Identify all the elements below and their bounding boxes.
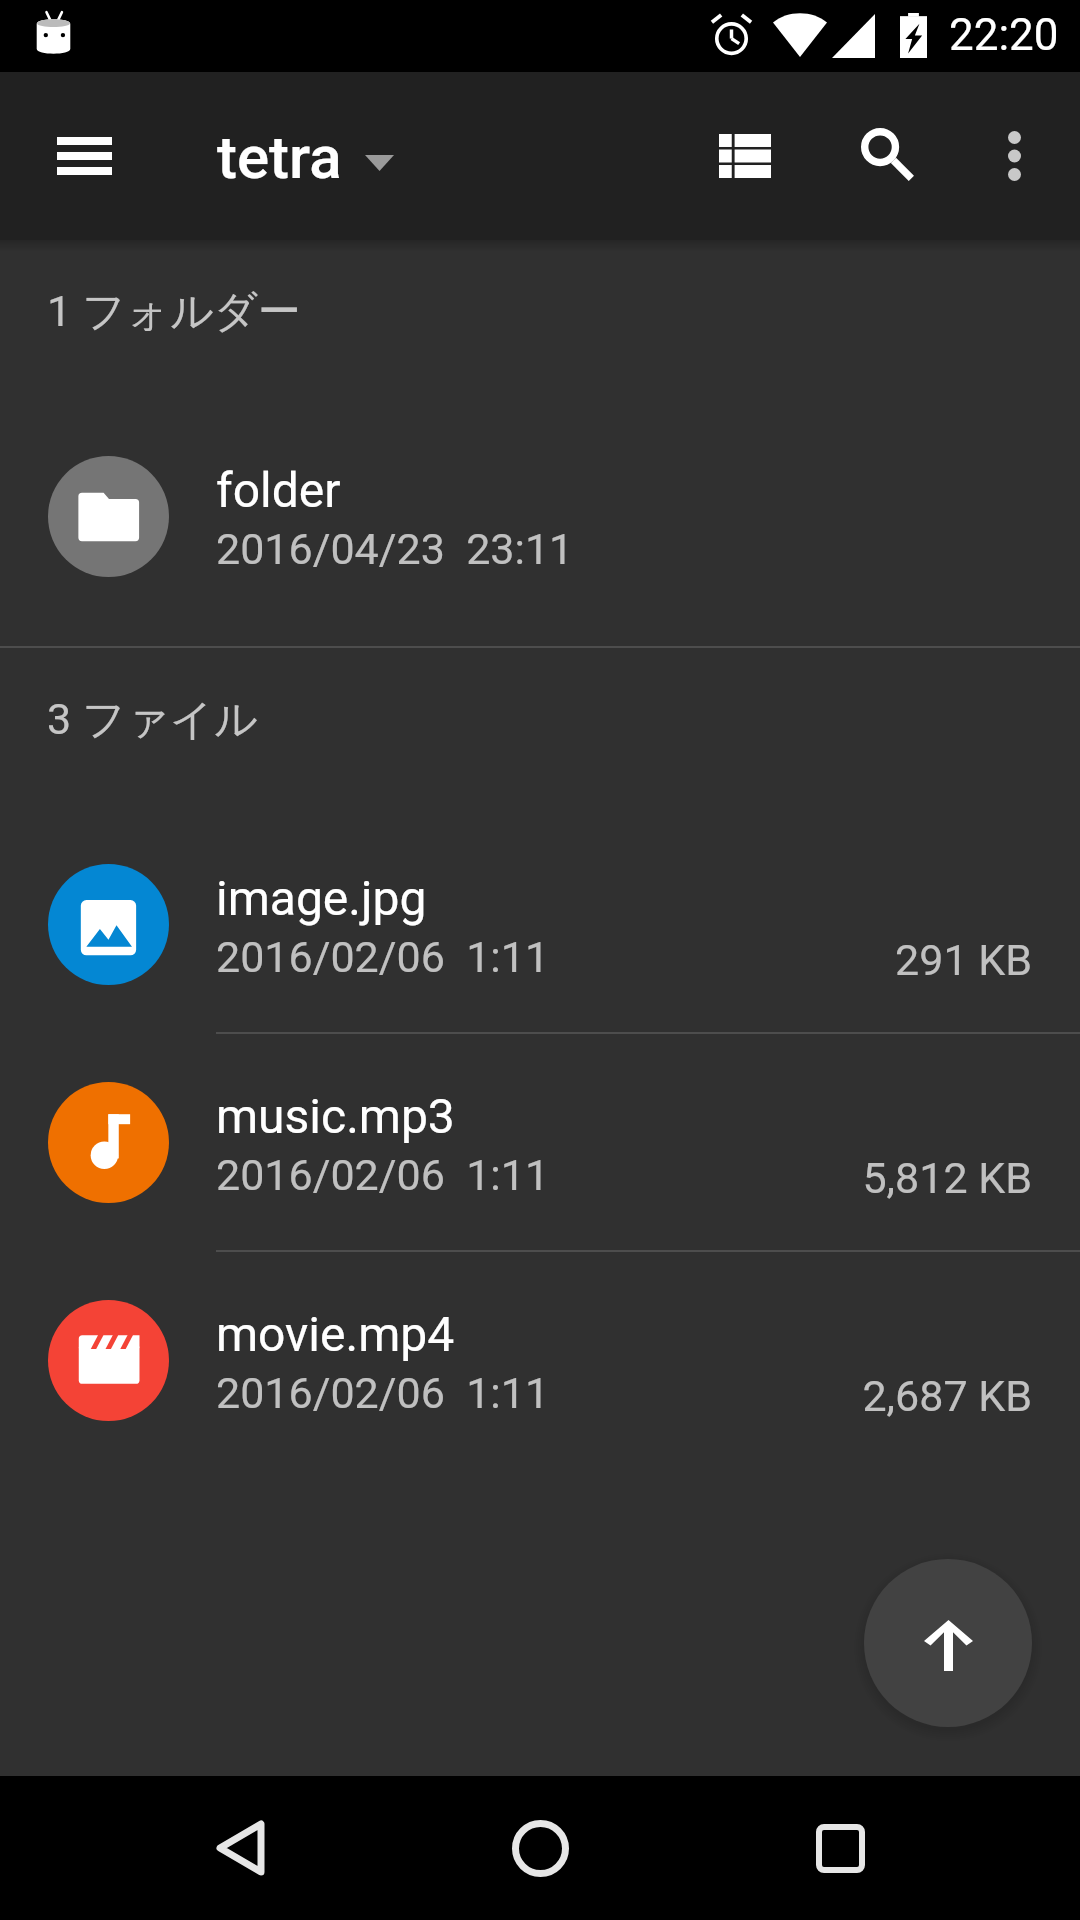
- staticText: folder: [216, 462, 341, 518]
- staticText: 5,812 KB: [862, 1153, 1032, 1203]
- button[interactable]: tetra, choose storage: [217, 122, 399, 192]
- staticText: music.mp3: [216, 1088, 455, 1144]
- button[interactable]: Back: [180, 1788, 300, 1908]
- staticText: 2016/02/06 1:11: [216, 1150, 550, 1200]
- staticText: 291 KB: [895, 935, 1032, 985]
- button[interactable]: Home: [480, 1788, 600, 1908]
- button[interactable]: Open navigation drawer: [30, 102, 138, 210]
- staticText: 2,687 KB: [862, 1371, 1032, 1421]
- button[interactable]: Switch view: [693, 104, 797, 208]
- staticText: 3 ファイル: [47, 693, 258, 747]
- button[interactable]: music.mp3: [0, 1034, 1080, 1250]
- staticText: 2016/02/06 1:11: [216, 932, 550, 982]
- button[interactable]: Scroll to top: [864, 1559, 1032, 1727]
- button[interactable]: Search: [835, 104, 939, 208]
- button[interactable]: folder: [0, 408, 1080, 624]
- staticText: image.jpg: [216, 870, 427, 926]
- button[interactable]: Recent apps: [780, 1788, 900, 1908]
- staticText: movie.mp4: [216, 1306, 455, 1362]
- staticText: tetra: [217, 122, 342, 192]
- button[interactable]: image.jpg: [0, 816, 1080, 1032]
- staticText: 2016/02/06 1:11: [216, 1368, 550, 1418]
- staticText: 1 フォルダー: [47, 285, 301, 339]
- staticText: 2016/04/23 23:11: [216, 524, 574, 574]
- button[interactable]: More options: [962, 104, 1066, 208]
- button[interactable]: movie.mp4: [0, 1252, 1080, 1468]
- staticText: 22:20: [949, 9, 1059, 61]
